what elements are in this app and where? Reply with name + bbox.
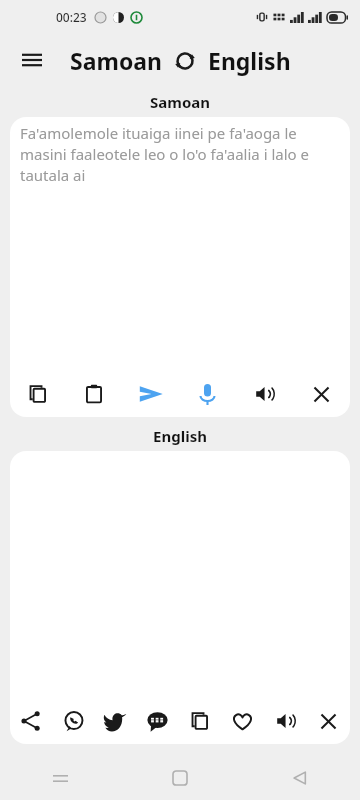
button[interactable]: Recent apps [0,756,120,800]
staticText: English [153,426,207,446]
button[interactable]: Share [10,698,52,744]
button[interactable]: Translate [122,371,179,417]
button[interactable]: Clear [293,371,350,417]
button[interactable]: Favorite [221,698,264,744]
button[interactable]: Copy [10,371,66,417]
button[interactable]: Fa'amolemole ituaiga iinei pe fa'aoga le… [20,123,336,186]
button[interactable]: Copy [178,698,221,744]
staticText: 00:23 [56,9,87,25]
button[interactable]: Send via Twitter [94,698,136,744]
button[interactable]: Clear [307,698,350,744]
button[interactable]: Speak [236,371,293,417]
button[interactable]: English [208,45,291,76]
staticText: English [208,45,291,76]
button[interactable]: Send via SMS [136,698,178,744]
button[interactable]: Speak [264,698,307,744]
staticText: Samoan [70,45,162,76]
button[interactable]: Back [240,756,360,800]
button[interactable]: Paste [66,371,122,417]
button[interactable]: Menu [10,38,54,82]
button[interactable]: Voice input [179,371,236,417]
button[interactable]: Home [120,756,240,800]
button[interactable]: Send via WhatsApp [52,698,94,744]
button[interactable]: Samoan [70,45,162,76]
button[interactable]: Swap languages [170,46,200,76]
staticText: Samoan [150,92,210,112]
